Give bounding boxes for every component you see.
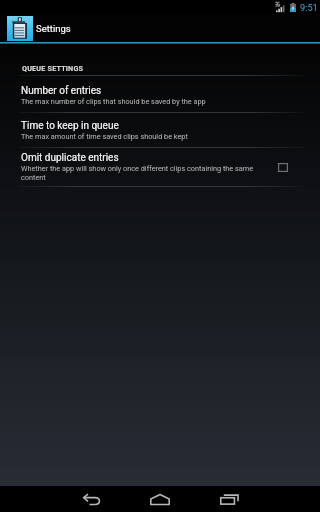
- staticText: The max number of clips that should be s…: [21, 97, 206, 106]
- staticText: The max amount of time saved clips shoul…: [21, 132, 188, 141]
- staticText: Omit duplicate entries: [21, 152, 119, 164]
- button[interactable]: Omit duplicate entries: [0, 148, 320, 186]
- button[interactable]: Omit duplicate entries: [278, 148, 288, 186]
- staticText: QUEUE SETTINGS: [22, 64, 84, 72]
- button[interactable]: Time to keep in queue: [0, 113, 320, 147]
- button[interactable]: Settings: [0, 14, 320, 42]
- staticText: Time to keep in queue: [21, 120, 119, 132]
- button[interactable]: Number of entries: [0, 78, 320, 112]
- button[interactable]: Home: [136, 486, 184, 512]
- button[interactable]: Recent apps: [205, 486, 253, 512]
- button[interactable]: Back: [68, 486, 116, 512]
- staticText: 9:51: [300, 2, 318, 13]
- staticText: Settings: [36, 23, 71, 34]
- staticText: Whether the app will show only once diff…: [21, 164, 272, 182]
- staticText: Number of entries: [21, 85, 102, 97]
